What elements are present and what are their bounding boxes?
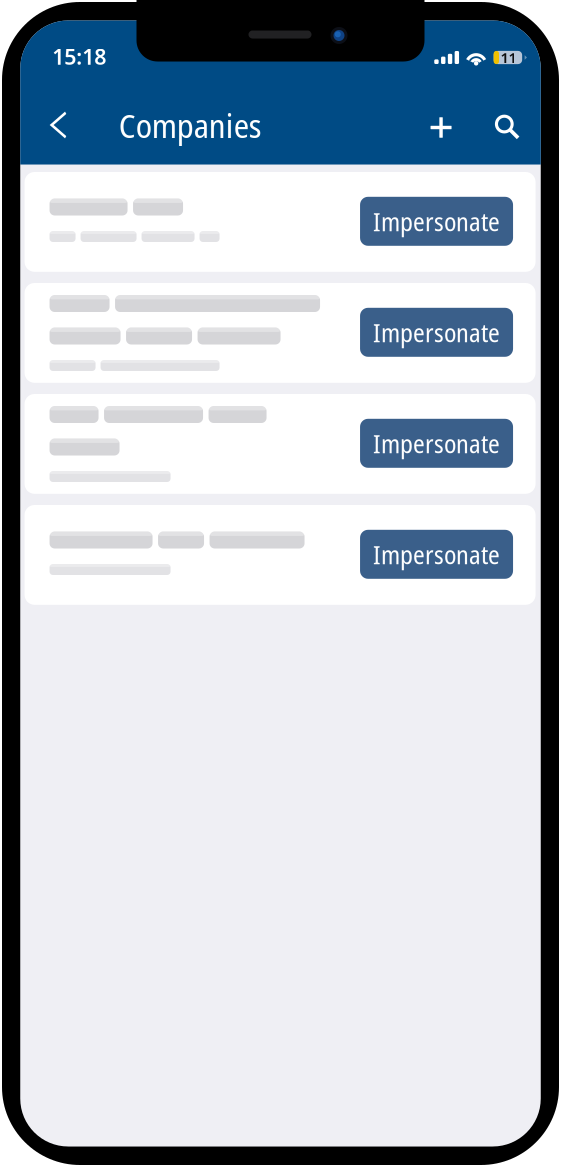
staticText: Impersonate	[373, 204, 500, 238]
staticText: 11	[500, 47, 516, 67]
staticText: Impersonate	[373, 315, 500, 349]
staticText: Impersonate	[373, 426, 500, 460]
staticText: 15:18	[52, 42, 106, 71]
staticText: Companies	[119, 102, 262, 148]
button[interactable]: Impersonate	[360, 530, 513, 579]
button[interactable]: Back	[35, 102, 81, 148]
button[interactable]: Impersonate	[360, 419, 513, 468]
staticText: Impersonate	[373, 537, 500, 571]
button[interactable]: Search	[484, 104, 530, 150]
button[interactable]: Add	[418, 104, 464, 150]
button[interactable]: Impersonate	[360, 308, 513, 357]
button[interactable]: Impersonate	[360, 197, 513, 246]
